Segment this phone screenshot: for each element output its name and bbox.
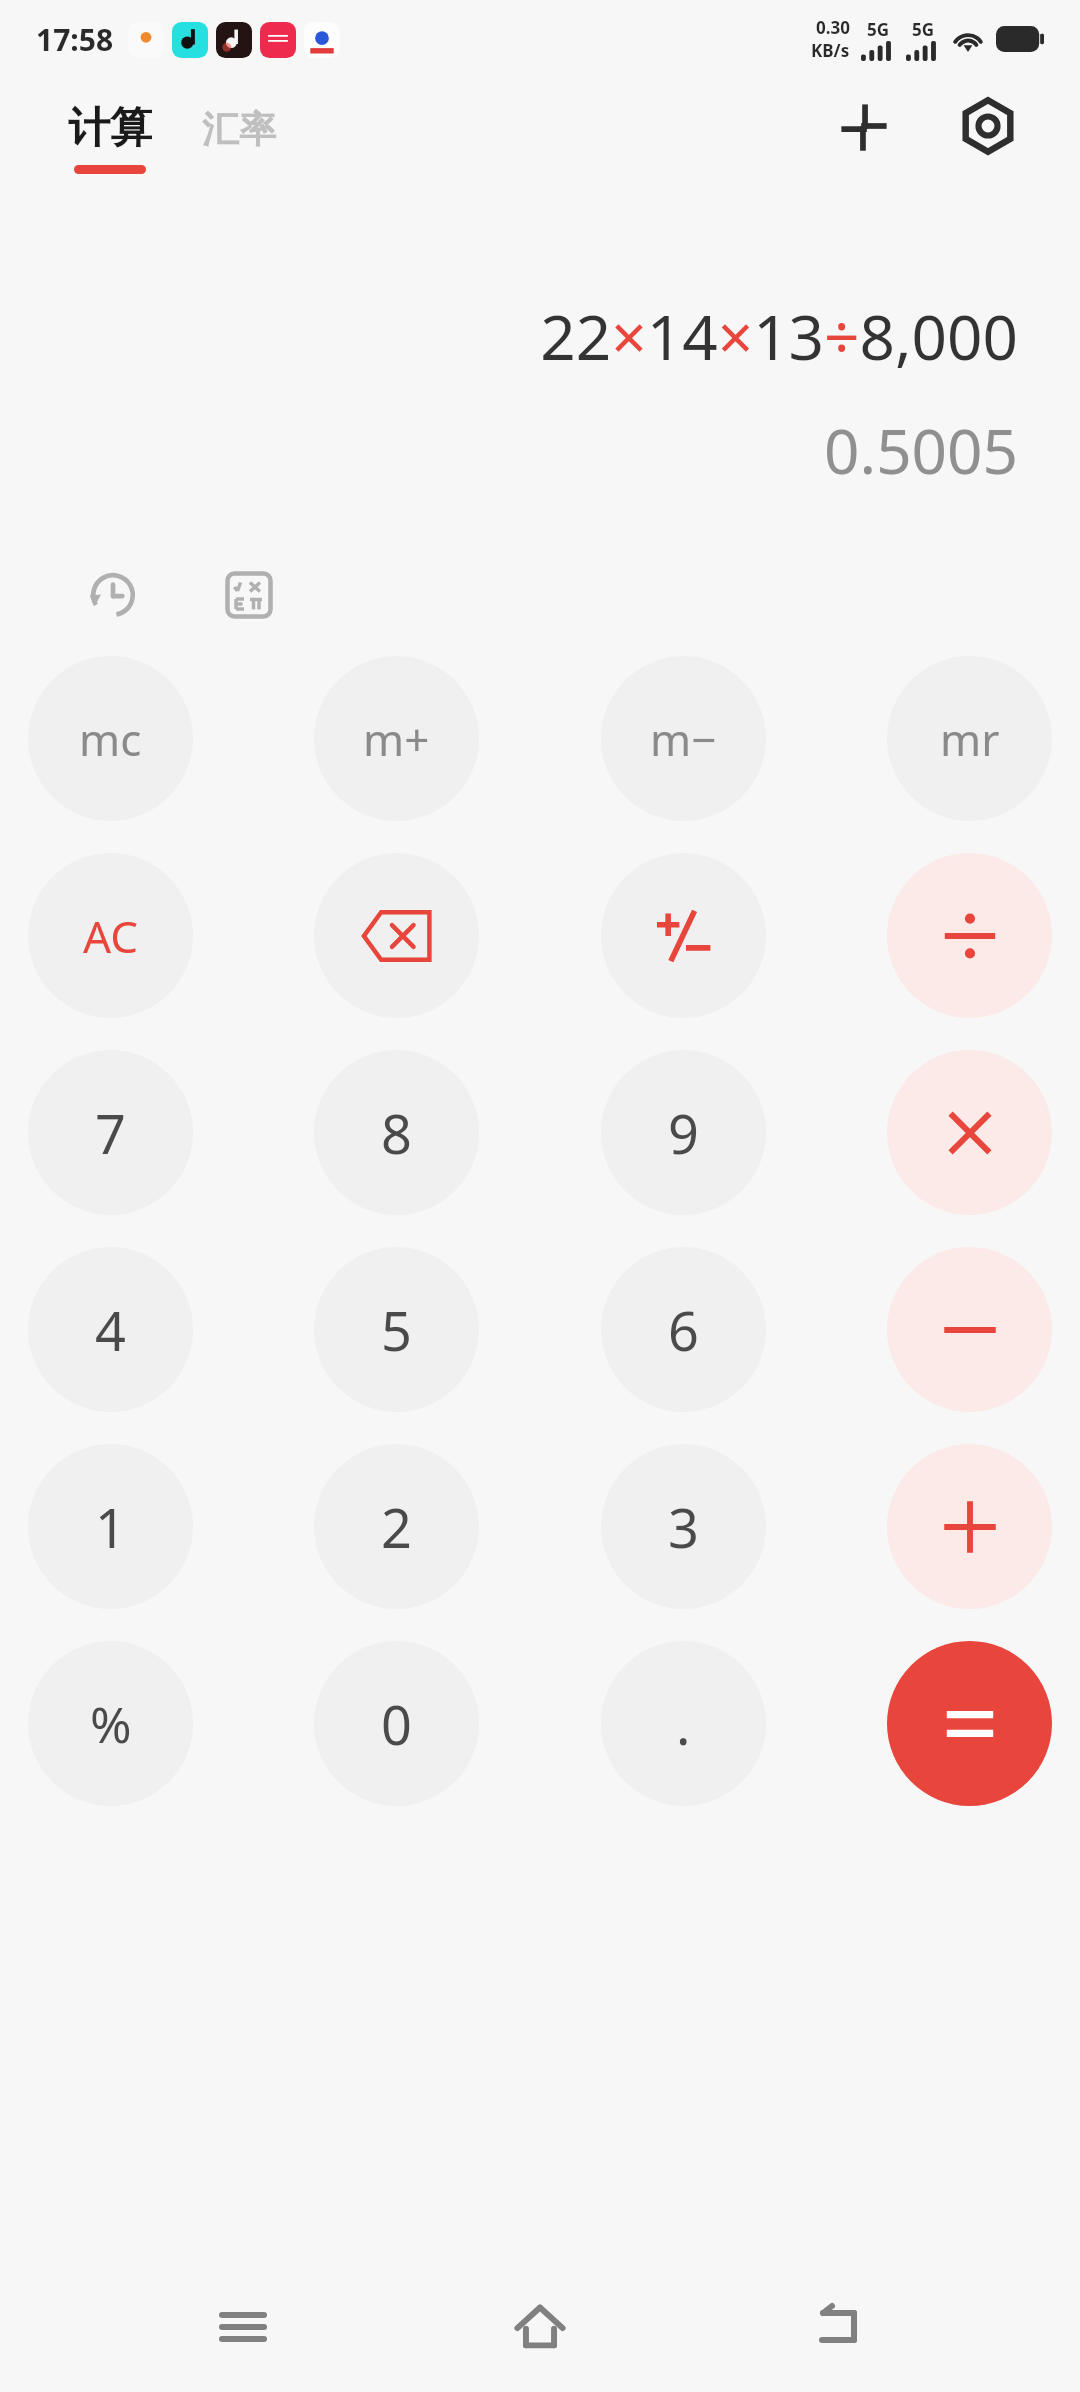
- button[interactable]: 6: [601, 1247, 766, 1412]
- button[interactable]: 9: [601, 1050, 766, 1215]
- staticText: 5: [381, 1293, 412, 1367]
- staticText: 7: [95, 1096, 126, 1170]
- staticText: 4: [95, 1293, 126, 1367]
- staticText: m+: [363, 709, 430, 769]
- staticText: 6: [668, 1293, 699, 1367]
- button[interactable]: 1: [28, 1444, 193, 1609]
- button[interactable]: mc: [28, 656, 193, 821]
- staticText: 0: [381, 1687, 412, 1761]
- button[interactable]: History: [80, 562, 146, 628]
- staticText: 计算: [68, 102, 152, 155]
- staticText: 5G: [912, 18, 935, 41]
- button[interactable]: Back: [783, 2272, 893, 2382]
- button[interactable]: Multiply: [887, 1050, 1052, 1215]
- button[interactable]: m−: [601, 656, 766, 821]
- staticText: mc: [79, 709, 142, 769]
- button[interactable]: Divide: [887, 853, 1052, 1018]
- staticText: 17:58: [36, 19, 114, 60]
- button[interactable]: Backspace: [314, 853, 479, 1018]
- staticText: 22×14×13÷8,000: [0, 294, 1018, 378]
- button[interactable]: 3: [601, 1444, 766, 1609]
- staticText: KB/s: [811, 39, 850, 62]
- button[interactable]: Scientific: [216, 562, 282, 628]
- button[interactable]: .: [601, 1641, 766, 1806]
- button[interactable]: Plus minus: [601, 853, 766, 1018]
- button[interactable]: Equals: [887, 1641, 1052, 1806]
- staticText: .: [676, 1687, 691, 1761]
- staticText: 3: [668, 1490, 699, 1564]
- button[interactable]: Plus: [887, 1444, 1052, 1609]
- button[interactable]: mr: [887, 656, 1052, 821]
- button[interactable]: m+: [314, 656, 479, 821]
- staticText: m−: [650, 709, 717, 769]
- button[interactable]: 0: [314, 1641, 479, 1806]
- staticText: %: [90, 1690, 132, 1758]
- button[interactable]: %: [28, 1641, 193, 1806]
- button[interactable]: Collapse: [828, 90, 900, 162]
- button[interactable]: 计算: [64, 96, 156, 180]
- button[interactable]: 2: [314, 1444, 479, 1609]
- staticText: 9: [668, 1096, 699, 1170]
- button[interactable]: Recents: [188, 2272, 298, 2382]
- staticText: 5G: [867, 18, 890, 41]
- button[interactable]: 7: [28, 1050, 193, 1215]
- button[interactable]: Settings: [952, 90, 1024, 162]
- button[interactable]: AC: [28, 853, 193, 1018]
- staticText: 8: [381, 1096, 412, 1170]
- button[interactable]: 汇率: [198, 109, 280, 168]
- staticText: 0.30: [816, 16, 850, 39]
- button[interactable]: 5: [314, 1247, 479, 1412]
- button[interactable]: 4: [28, 1247, 193, 1412]
- staticText: AC: [83, 906, 139, 966]
- staticText: 1: [95, 1490, 126, 1564]
- staticText: mr: [940, 709, 1000, 769]
- button[interactable]: Home: [485, 2272, 595, 2382]
- staticText: 2: [381, 1490, 412, 1564]
- staticText: 汇率: [202, 106, 276, 153]
- button[interactable]: 8: [314, 1050, 479, 1215]
- button[interactable]: Minus: [887, 1247, 1052, 1412]
- staticText: 0.5005: [0, 408, 1018, 492]
